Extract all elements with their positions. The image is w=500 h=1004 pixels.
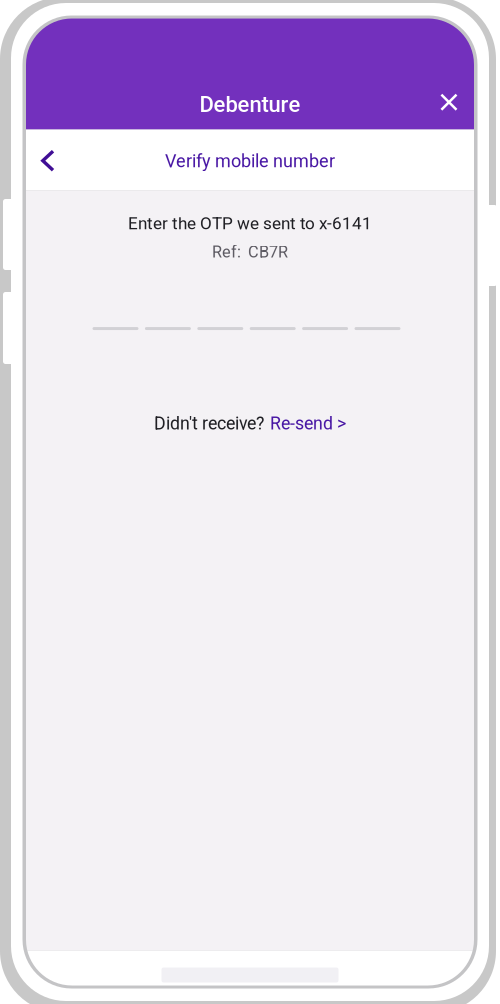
button[interactable]: Close (428, 81, 470, 123)
button[interactable]: Didn't receive? (146, 409, 354, 438)
staticText: Verify mobile number (165, 150, 335, 172)
staticText: CB7R (248, 242, 288, 262)
staticText: Enter the OTP we sent to x-6141 (128, 213, 372, 233)
staticText: Ref: (212, 242, 241, 262)
staticText: Debenture (199, 91, 300, 117)
staticText: Re-send > (270, 413, 346, 434)
button[interactable]: Back (26, 138, 70, 182)
staticText: Didn't receive? (154, 413, 264, 434)
